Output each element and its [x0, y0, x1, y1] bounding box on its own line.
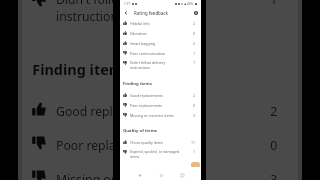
staticText: Didn't follow delivery instructions	[56, 0, 229, 24]
button[interactable]: Chose quality items	[120, 137, 201, 147]
button[interactable]: Poor replacements	[120, 100, 201, 110]
button[interactable]: Back	[121, 8, 130, 17]
staticText: Quality of items	[123, 127, 157, 133]
staticText: Didn't follow delivery instructions	[130, 60, 181, 70]
button[interactable]: Help	[191, 8, 200, 17]
staticText: Poor replacements	[130, 103, 181, 108]
staticText: Rating feedback	[134, 10, 168, 16]
staticText: 0	[270, 136, 280, 153]
button[interactable]: Helpful info	[120, 18, 201, 28]
button[interactable]: Good replacements	[22, 92, 297, 126]
staticText: 2	[193, 93, 196, 98]
staticText: 1	[193, 149, 196, 154]
staticText: Finding items	[123, 80, 152, 86]
button[interactable]: Smart bagging	[120, 38, 201, 48]
staticText: Expired, spoiled, or damaged items	[130, 149, 181, 159]
button[interactable]: Add feedback	[191, 162, 200, 167]
button[interactable]: Home	[158, 172, 164, 178]
staticText: Helpful info	[130, 21, 181, 26]
button[interactable]: Expired, spoiled, or damaged items	[120, 147, 201, 162]
staticText: Missing or incorrect items	[56, 170, 229, 180]
staticText: 1	[270, 0, 280, 7]
button[interactable]: Poor communication	[120, 48, 201, 58]
staticText: Missing or incorrect items	[130, 113, 181, 118]
staticText: 0	[193, 31, 196, 36]
staticText: 0	[193, 103, 196, 108]
button[interactable]: Missing or incorrect items	[120, 110, 201, 120]
button[interactable]: Education	[120, 28, 201, 38]
staticText: Finding items	[32, 58, 131, 78]
staticText: 3	[193, 113, 196, 118]
staticText: 1	[193, 51, 196, 56]
staticText: 1:17	[124, 2, 131, 6]
button[interactable]: Good replacements	[120, 90, 201, 100]
staticText: 1	[193, 60, 196, 65]
staticText: Good replacements	[130, 93, 181, 98]
staticText: Good replacements	[56, 102, 229, 119]
staticText: Chose quality items	[130, 140, 181, 145]
staticText: 3	[270, 170, 280, 180]
button[interactable]: Back	[136, 172, 142, 178]
staticText: 2	[193, 41, 196, 46]
button[interactable]: Poor replacements	[22, 126, 297, 160]
staticText: Education	[130, 31, 181, 36]
button[interactable]: Recents	[179, 172, 185, 178]
staticText: 44%	[187, 2, 194, 6]
staticText: 2	[270, 102, 280, 119]
button[interactable]: Didn't follow delivery instructions	[120, 58, 201, 73]
staticText: Poor replacements	[56, 136, 229, 153]
staticText: 2	[193, 21, 196, 26]
button[interactable]: Didn't follow delivery instructions	[22, 0, 297, 34]
staticText: Poor communication	[130, 51, 181, 56]
button[interactable]: Missing or incorrect items	[22, 160, 297, 180]
staticText: 11	[191, 140, 196, 145]
staticText: Smart bagging	[130, 41, 181, 46]
